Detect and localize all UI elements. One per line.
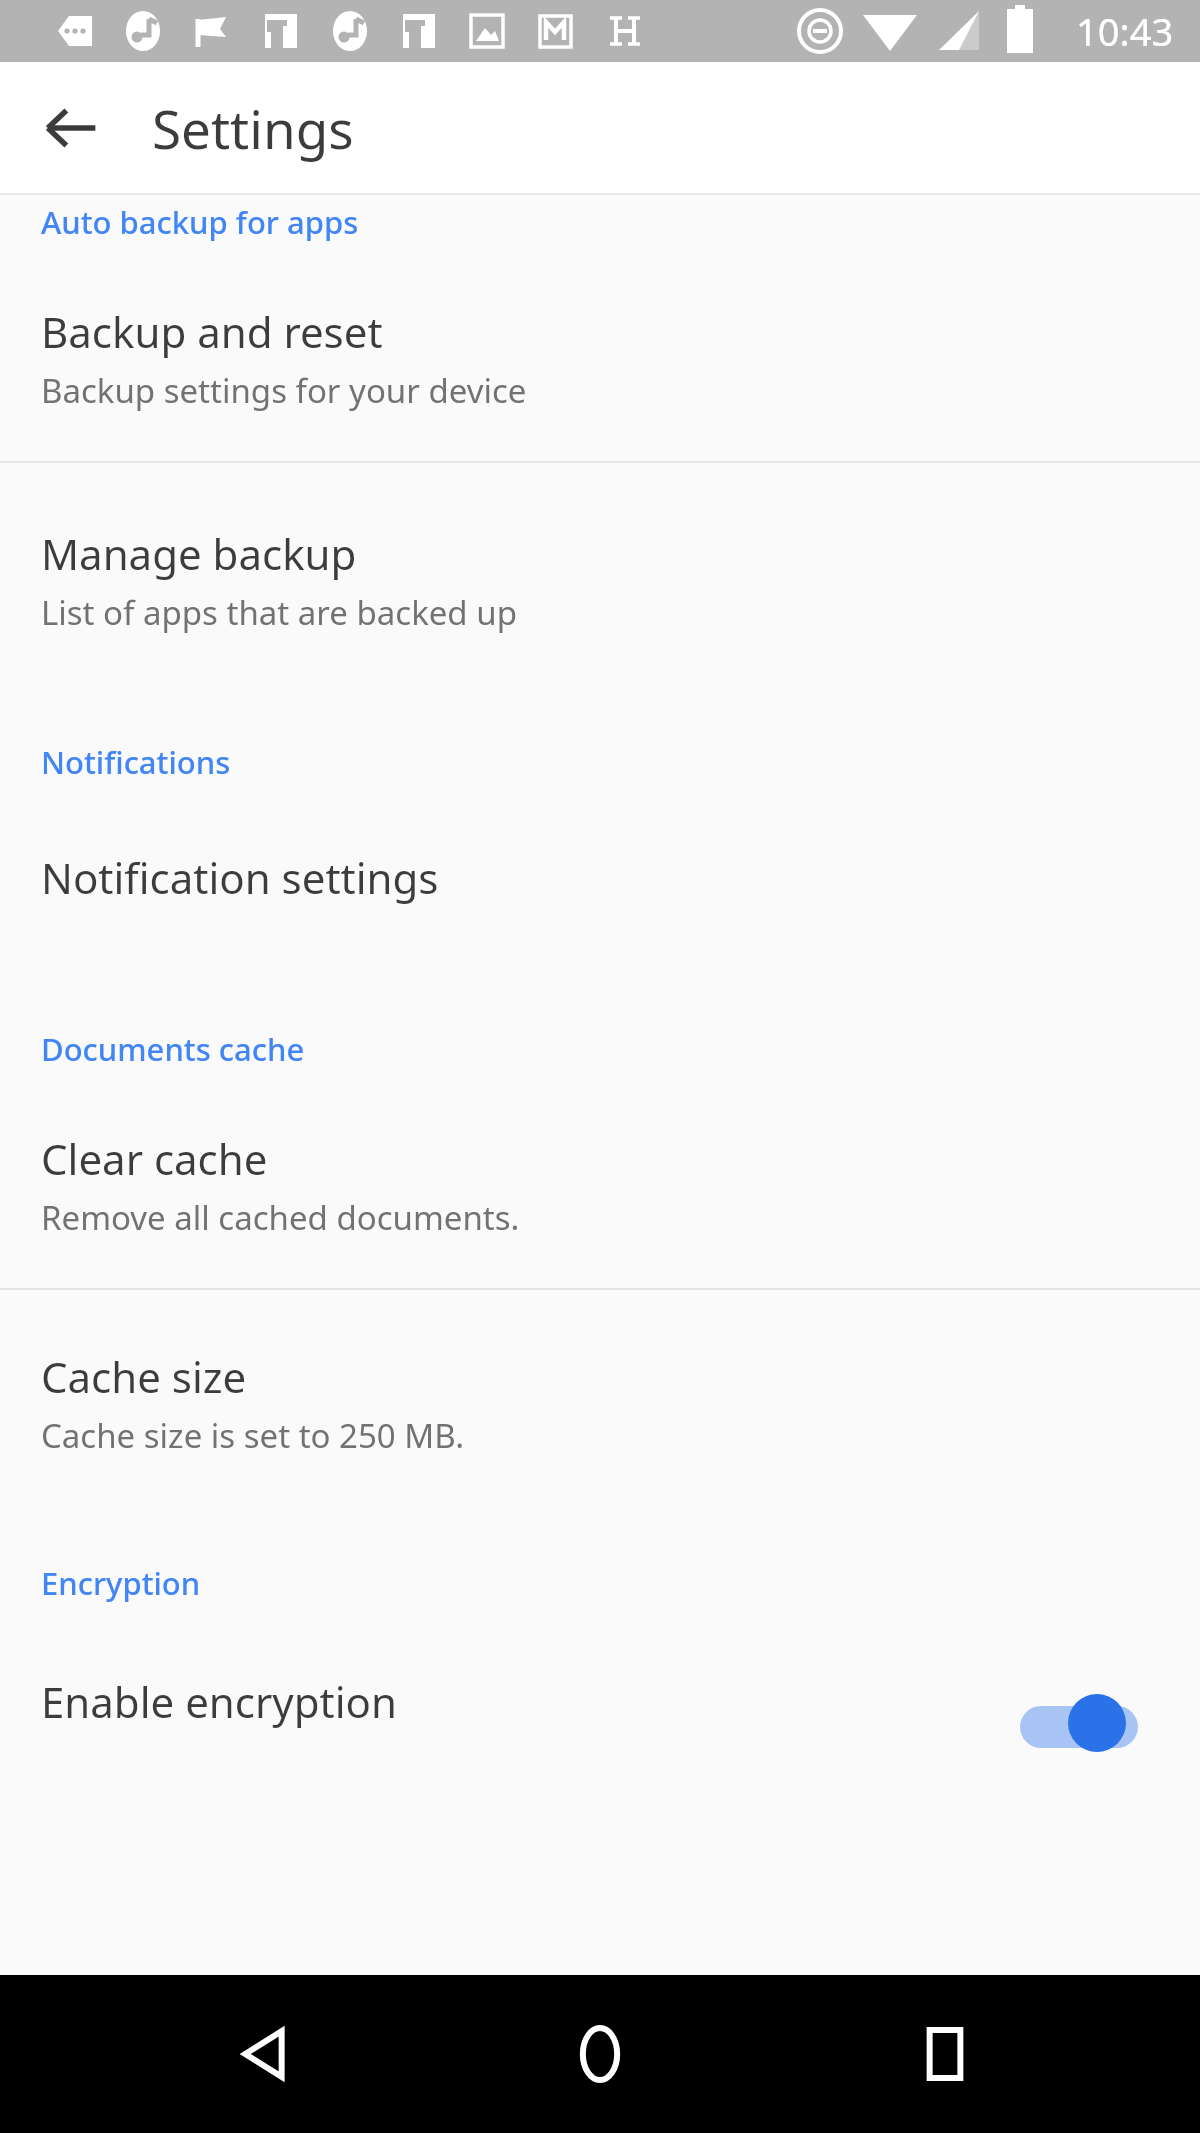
button[interactable]: Recent apps: [890, 1999, 1000, 2109]
staticText: Manage backup: [41, 525, 357, 582]
staticText: Backup and reset: [41, 303, 383, 360]
staticText: Clear cache: [41, 1130, 268, 1187]
staticText: Remove all cached documents.: [41, 1195, 520, 1240]
button[interactable]: Backup and reset: [0, 243, 1200, 461]
button[interactable]: Clear cache: [0, 1070, 1200, 1288]
button[interactable]: Home: [545, 1999, 655, 2109]
staticText: Backup settings for your device: [41, 368, 527, 413]
staticText: Enable encryption: [41, 1673, 397, 1730]
staticText: Encryption: [41, 1562, 201, 1604]
staticText: Cache size is set to 250 MB.: [41, 1413, 465, 1458]
staticText: Notification settings: [41, 849, 439, 906]
button[interactable]: Back: [30, 87, 112, 169]
staticText: Notifications: [41, 741, 231, 783]
button[interactable]: Manage backup: [0, 463, 1200, 683]
staticText: Cache size: [41, 1348, 247, 1405]
button[interactable]: Notification settings: [0, 783, 1200, 950]
staticText: Auto backup for apps: [41, 201, 359, 243]
staticText: 10:43: [1076, 5, 1174, 57]
button[interactable]: Cache size: [0, 1290, 1200, 1506]
staticText: Settings: [152, 92, 354, 164]
staticText: List of apps that are backed up: [41, 590, 517, 635]
button[interactable]: Back: [210, 1999, 320, 2109]
button[interactable]: Enable encryption: [0, 1604, 1200, 1736]
staticText: Documents cache: [41, 1028, 305, 1070]
button[interactable]: Enable encryption toggle: [1020, 1666, 1170, 1736]
